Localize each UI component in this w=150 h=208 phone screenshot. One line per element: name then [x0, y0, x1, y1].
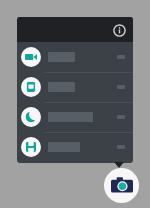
button[interactable]: [17, 72, 133, 102]
button[interactable]: [17, 102, 133, 132]
button[interactable]: [17, 132, 133, 162]
button[interactable]: [17, 42, 133, 72]
button[interactable]: Info: [110, 21, 128, 39]
button[interactable]: Camera: [104, 168, 139, 203]
